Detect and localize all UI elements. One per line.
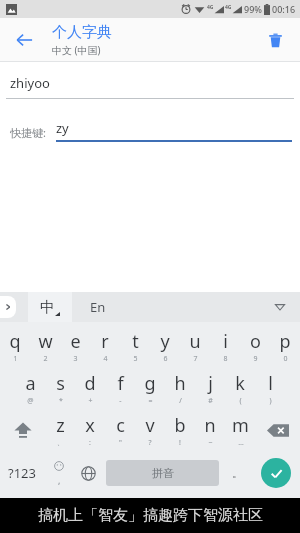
staticText: 5 bbox=[133, 354, 138, 364]
staticText: f bbox=[117, 371, 124, 396]
button[interactable]: t bbox=[120, 325, 150, 367]
staticText: k bbox=[235, 371, 245, 396]
staticText: ! bbox=[179, 438, 181, 448]
button[interactable]: 。 bbox=[222, 451, 252, 495]
button[interactable]: n bbox=[195, 409, 225, 451]
staticText: q bbox=[9, 329, 21, 354]
staticText: y bbox=[160, 329, 170, 354]
staticText: b bbox=[174, 413, 186, 438]
staticText: z bbox=[56, 413, 65, 438]
button[interactable]: c bbox=[105, 409, 135, 451]
staticText: a bbox=[25, 371, 36, 396]
staticText: 7 bbox=[193, 354, 198, 364]
staticText: 6 bbox=[163, 354, 168, 364]
staticText: 搞机上「智友」搞趣跨下智源社区 bbox=[38, 506, 263, 525]
button[interactable]: r bbox=[90, 325, 120, 367]
button[interactable]: Change language bbox=[73, 451, 103, 495]
button[interactable]: 中 bbox=[28, 292, 72, 322]
staticText: 拼音 bbox=[152, 466, 174, 480]
staticText: n bbox=[204, 413, 216, 438]
staticText: 00:16 bbox=[272, 3, 296, 15]
staticText: i bbox=[223, 329, 228, 354]
staticText: v bbox=[145, 413, 155, 438]
button[interactable]: h bbox=[165, 367, 195, 409]
button[interactable]: i bbox=[210, 325, 240, 367]
button[interactable]: w bbox=[30, 325, 60, 367]
staticText: … bbox=[238, 438, 244, 448]
staticText: w bbox=[38, 329, 53, 354]
staticText: ?123 bbox=[8, 464, 36, 482]
staticText: - bbox=[119, 396, 122, 406]
staticText: g bbox=[144, 371, 156, 396]
staticText: # bbox=[208, 396, 213, 406]
button[interactable]: Back bbox=[6, 22, 42, 58]
staticText: x bbox=[85, 413, 95, 438]
button[interactable]: k bbox=[225, 367, 255, 409]
staticText: 99% bbox=[244, 3, 262, 15]
button[interactable]: Shift bbox=[0, 409, 45, 451]
staticText: 、 bbox=[57, 438, 64, 447]
staticText: 4G bbox=[225, 4, 232, 11]
staticText: j bbox=[208, 371, 213, 396]
staticText: 个人字典 bbox=[52, 23, 112, 42]
staticText: zhiyoo bbox=[10, 74, 50, 92]
staticText: 中 bbox=[40, 298, 55, 317]
button[interactable]: p bbox=[270, 325, 300, 367]
staticText: 。 bbox=[232, 466, 243, 480]
button[interactable]: Backspace bbox=[255, 409, 300, 451]
staticText: t bbox=[132, 329, 139, 354]
staticText: ? bbox=[148, 438, 152, 448]
staticText: 4G bbox=[207, 4, 214, 11]
staticText: d bbox=[84, 371, 96, 396]
button[interactable]: m bbox=[225, 409, 255, 451]
staticText: 4 bbox=[103, 354, 108, 364]
button[interactable]: ?123 bbox=[0, 451, 44, 495]
staticText: 9 bbox=[253, 354, 258, 364]
button[interactable]: f bbox=[105, 367, 135, 409]
button[interactable]: En bbox=[90, 292, 130, 322]
button[interactable]: q bbox=[0, 325, 30, 367]
button[interactable]: Enter bbox=[252, 451, 300, 495]
staticText: : bbox=[89, 438, 91, 448]
staticText: m bbox=[232, 413, 249, 438]
button[interactable]: b bbox=[165, 409, 195, 451]
staticText: l bbox=[268, 371, 273, 396]
staticText: 2 bbox=[43, 354, 48, 364]
button[interactable]: d bbox=[75, 367, 105, 409]
staticText: + bbox=[88, 396, 93, 406]
staticText: 中文 (中国) bbox=[52, 43, 101, 57]
button[interactable]: u bbox=[180, 325, 210, 367]
button[interactable]: 拼音 bbox=[106, 460, 219, 486]
button[interactable]: e bbox=[60, 325, 90, 367]
staticText: zy bbox=[56, 119, 69, 137]
button[interactable]: v bbox=[135, 409, 165, 451]
button[interactable]: y bbox=[150, 325, 180, 367]
staticText: 1 bbox=[13, 354, 18, 364]
staticText: 快捷键: bbox=[10, 125, 46, 140]
staticText: s bbox=[56, 371, 65, 396]
button[interactable]: s bbox=[45, 367, 75, 409]
staticText: * bbox=[59, 396, 63, 406]
button[interactable]: g bbox=[135, 367, 165, 409]
button[interactable]: Emoji bbox=[44, 451, 73, 495]
staticText: @ bbox=[27, 396, 34, 406]
button[interactable]: x bbox=[75, 409, 105, 451]
staticText: e bbox=[70, 329, 81, 354]
button[interactable]: Delete bbox=[258, 23, 292, 57]
staticText: 0 bbox=[283, 354, 288, 364]
staticText: / bbox=[179, 396, 182, 406]
staticText: 3 bbox=[73, 354, 78, 364]
button[interactable]: a bbox=[15, 367, 45, 409]
staticText: h bbox=[174, 371, 186, 396]
staticText: c bbox=[116, 413, 125, 438]
staticText: r bbox=[101, 329, 109, 354]
staticText: " bbox=[119, 438, 122, 448]
staticText: p bbox=[279, 329, 291, 354]
button[interactable]: l bbox=[255, 367, 285, 409]
button[interactable]: Hide keyboard bbox=[268, 295, 292, 319]
button[interactable]: o bbox=[240, 325, 270, 367]
staticText: 8 bbox=[223, 354, 228, 364]
button[interactable]: j bbox=[195, 367, 225, 409]
button[interactable]: z bbox=[45, 409, 75, 451]
button[interactable]: Expand toolbar bbox=[0, 296, 16, 318]
